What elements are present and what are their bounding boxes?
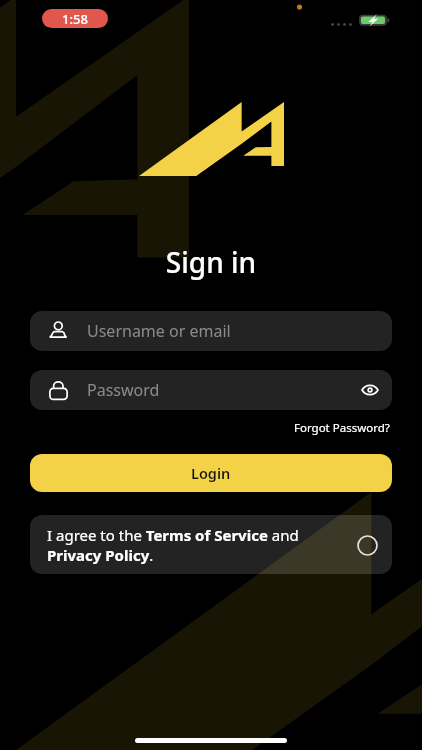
button[interactable]: Show password	[352, 372, 388, 408]
staticText: Username or email	[87, 320, 231, 342]
button[interactable]: Login	[30, 454, 392, 492]
button[interactable]: Username or email	[30, 311, 392, 351]
staticText: I agree to the Terms of Service and Priv…	[47, 525, 342, 565]
staticText: Forgot Password?	[294, 420, 390, 436]
staticText: 1:58	[62, 10, 88, 28]
button[interactable]: Forgot Password?	[292, 418, 392, 438]
staticText: Sign in	[0, 243, 422, 281]
button[interactable]: I agree to the Terms of Service and Priv…	[30, 515, 392, 574]
staticText: Password	[87, 379, 160, 401]
staticText: Login	[191, 463, 231, 483]
button[interactable]: Password	[30, 370, 392, 410]
button[interactable]: Agree to terms checkbox	[350, 528, 384, 562]
